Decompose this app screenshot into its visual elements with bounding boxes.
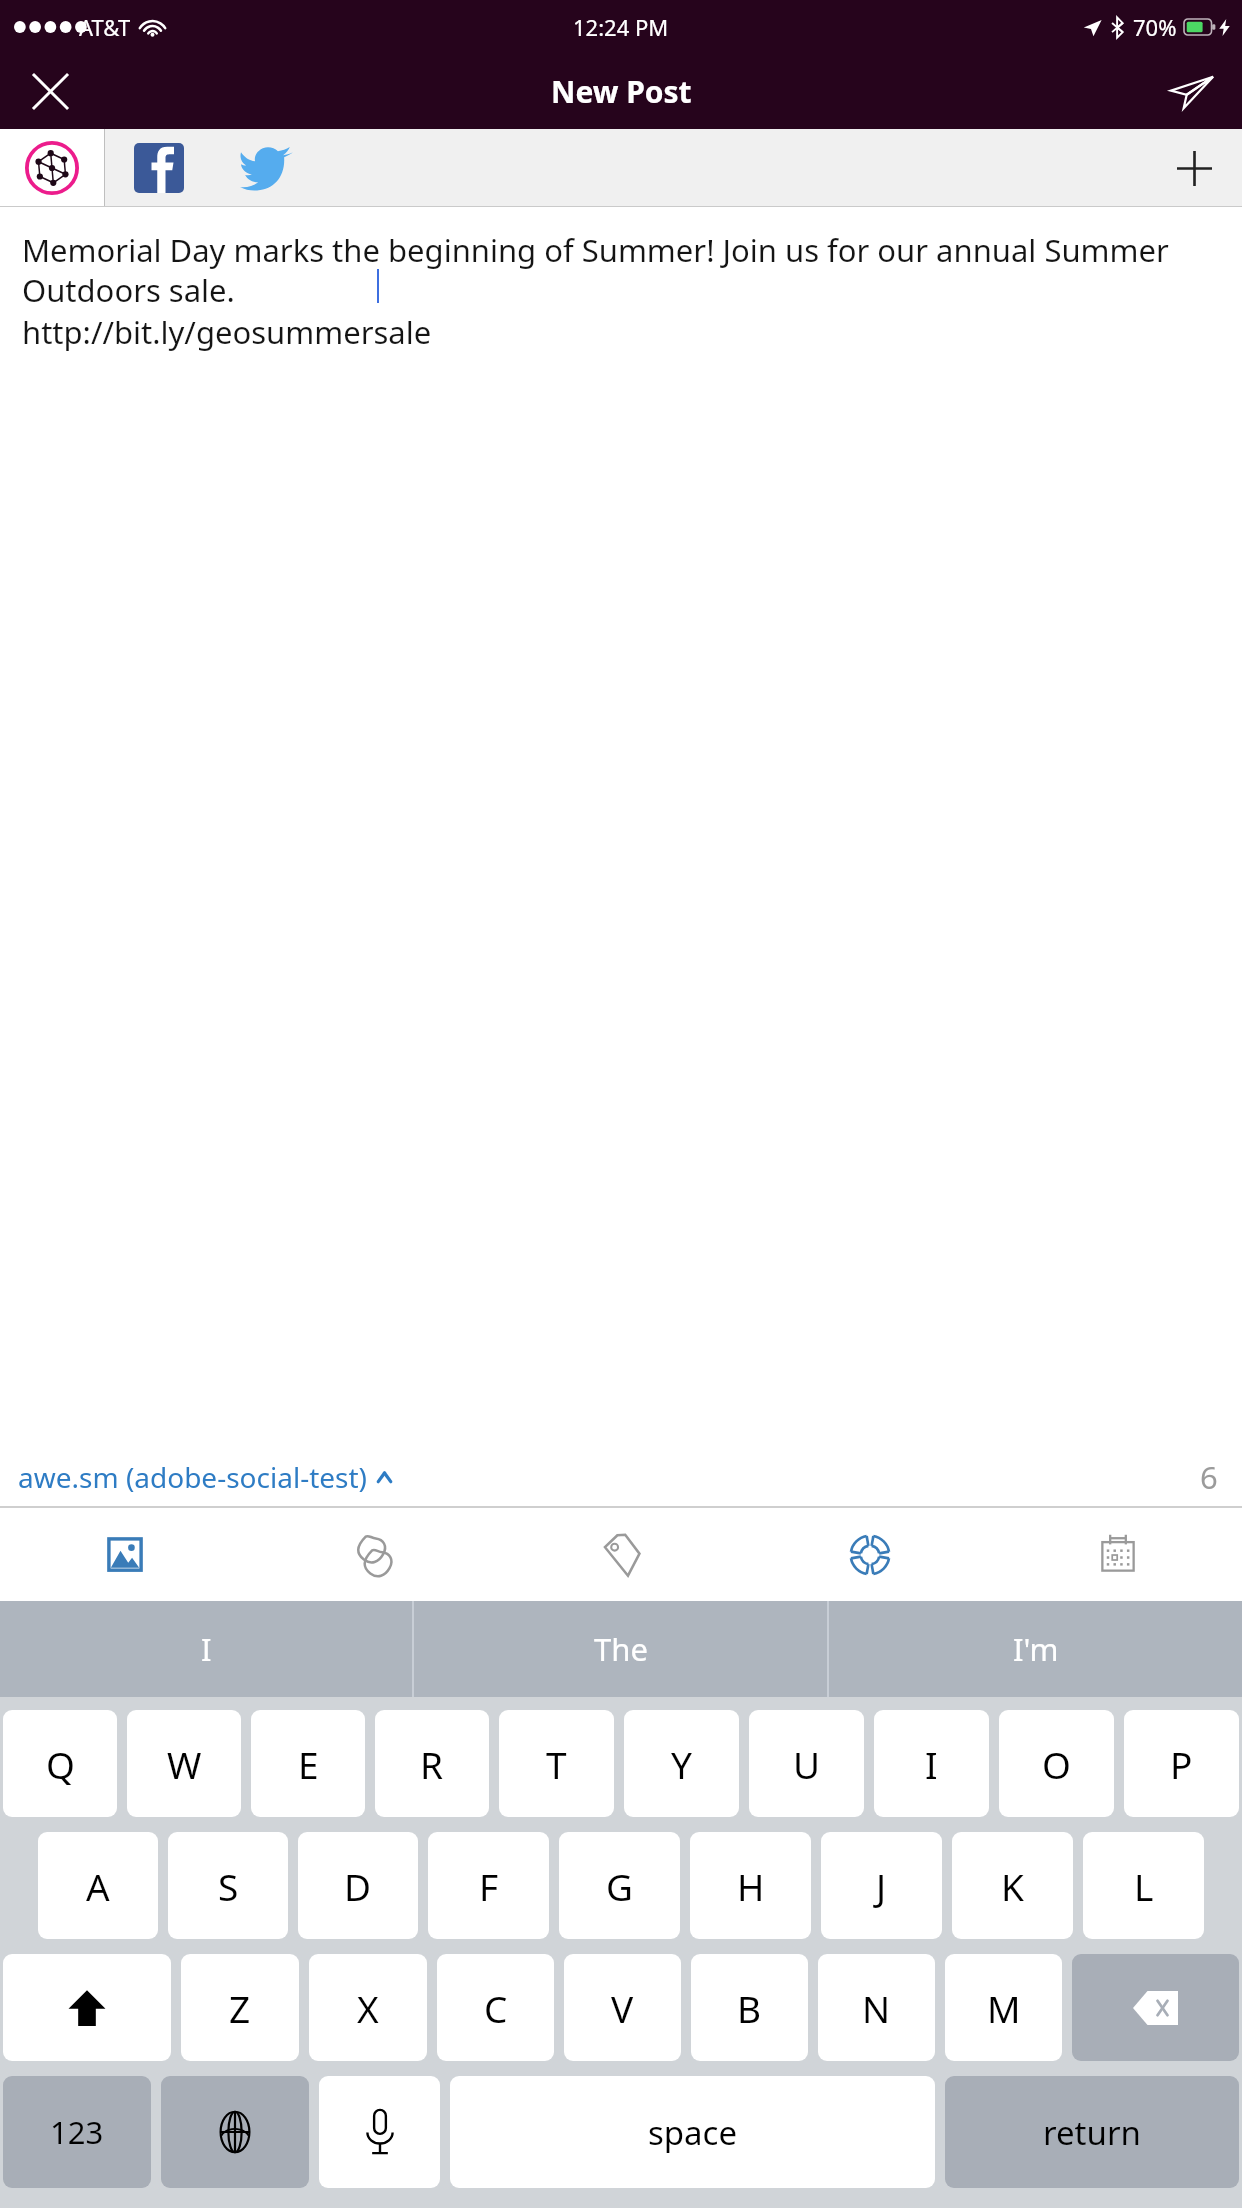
button[interactable]: L [1083, 1832, 1204, 1939]
button[interactable]: Send [1142, 54, 1242, 129]
staticText: B [737, 1983, 762, 2033]
staticText: I [201, 1628, 212, 1670]
staticText: space [648, 2110, 738, 2155]
button[interactable]: Shift [3, 1954, 171, 2061]
staticText: Memorial Day marks the beginning of Summ… [22, 229, 1222, 311]
button[interactable]: Z [181, 1954, 299, 2061]
staticText: I [925, 1739, 938, 1789]
staticText: New Post [551, 71, 692, 112]
button[interactable]: M [945, 1954, 1062, 2061]
staticText: P [1170, 1739, 1193, 1789]
button[interactable]: N [818, 1954, 935, 2061]
button[interactable]: I [0, 1601, 412, 1697]
button[interactable]: I [874, 1710, 989, 1817]
staticText: T [546, 1739, 567, 1789]
button[interactable]: return [945, 2076, 1239, 2188]
button[interactable]: Add tag [498, 1508, 746, 1601]
button[interactable]: The [414, 1601, 827, 1697]
button[interactable]: F [428, 1832, 549, 1939]
staticText: O [1042, 1739, 1071, 1789]
staticText: http://bit.ly/geosummersale [22, 311, 432, 353]
staticText: J [876, 1861, 887, 1911]
button[interactable]: P [1124, 1710, 1239, 1817]
staticText: Z [229, 1983, 251, 2033]
staticText: I'm [1013, 1628, 1059, 1670]
button[interactable]: C [437, 1954, 554, 2061]
staticText: K [1001, 1861, 1024, 1911]
staticText: 70% [1133, 12, 1177, 42]
button[interactable]: D [298, 1832, 418, 1939]
staticText: AT&T [79, 12, 131, 42]
button[interactable]: H [690, 1832, 811, 1939]
button[interactable]: awe.sm (adobe-social-test) [18, 1458, 394, 1496]
button[interactable]: B [691, 1954, 808, 2061]
button[interactable]: 123 [3, 2076, 151, 2188]
staticText: C [484, 1983, 508, 2033]
button[interactable]: Close [0, 54, 100, 129]
button[interactable]: J [821, 1832, 942, 1939]
button[interactable]: Schedule post [994, 1508, 1242, 1601]
button[interactable]: K [952, 1832, 1073, 1939]
staticText: W [167, 1739, 202, 1789]
button[interactable]: Adobe Social network [0, 129, 104, 207]
button[interactable]: Add image [0, 1508, 249, 1601]
staticText: 12:24 PM [573, 12, 669, 42]
button[interactable]: U [749, 1710, 864, 1817]
staticText: Y [671, 1739, 692, 1789]
button[interactable]: X [309, 1954, 427, 2061]
button[interactable]: A [38, 1832, 158, 1939]
button[interactable]: R [375, 1710, 489, 1817]
staticText: 6 [1200, 1456, 1218, 1498]
button[interactable]: Attach link [249, 1508, 498, 1601]
staticText: The [594, 1628, 648, 1670]
staticText: F [479, 1861, 499, 1911]
button[interactable]: E [251, 1710, 365, 1817]
button[interactable]: Memorial Day marks the beginning of Summ… [0, 207, 1242, 1446]
button[interactable]: V [564, 1954, 681, 2061]
button[interactable]: O [999, 1710, 1114, 1817]
button[interactable]: Y [624, 1710, 739, 1817]
staticText: Q [46, 1739, 75, 1789]
button[interactable]: Backspace [1072, 1954, 1239, 2061]
button[interactable]: S [168, 1832, 288, 1939]
staticText: E [298, 1739, 319, 1789]
staticText: G [606, 1861, 633, 1911]
staticText: awe.sm (adobe-social-test) [18, 1458, 367, 1496]
staticText: X [357, 1983, 379, 2033]
staticText: D [344, 1861, 372, 1911]
staticText: H [737, 1861, 765, 1911]
staticText: U [793, 1739, 821, 1789]
staticText: S [218, 1861, 239, 1911]
button[interactable]: Change keyboard [161, 2076, 309, 2188]
button[interactable]: T [499, 1710, 614, 1817]
button[interactable]: Dictation [319, 2076, 440, 2188]
button[interactable]: Facebook [105, 129, 213, 207]
button[interactable]: Target audience [746, 1508, 994, 1601]
button[interactable]: space [450, 2076, 935, 2188]
button[interactable]: Add account [1146, 129, 1242, 207]
staticText: R [420, 1739, 444, 1789]
staticText: N [862, 1983, 891, 2033]
button[interactable]: I'm [829, 1601, 1242, 1697]
staticText: return [1043, 2110, 1141, 2155]
staticText: A [86, 1861, 110, 1911]
button[interactable]: Twitter [213, 129, 321, 207]
staticText: 123 [50, 2111, 104, 2153]
button[interactable]: W [127, 1710, 241, 1817]
staticText: L [1134, 1861, 1154, 1911]
staticText: V [611, 1983, 634, 2033]
button[interactable]: Q [3, 1710, 117, 1817]
staticText: M [987, 1983, 1021, 2033]
button[interactable]: G [559, 1832, 680, 1939]
